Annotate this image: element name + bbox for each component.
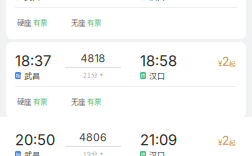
staticText: 汉口 bbox=[149, 70, 165, 81]
staticText: ▾ bbox=[100, 151, 103, 156]
staticText: 有票 bbox=[87, 96, 101, 107]
staticText: 始 bbox=[15, 151, 20, 156]
staticText: 4806 bbox=[79, 131, 107, 144]
staticText: 硬座 bbox=[17, 17, 31, 28]
staticText: 终 bbox=[140, 151, 145, 156]
button[interactable]: 18:37 bbox=[6, 42, 246, 118]
staticText: ¥ bbox=[218, 59, 222, 68]
staticText: ¥ bbox=[218, 138, 222, 147]
staticText: 始 bbox=[15, 72, 20, 79]
staticText: ▾ bbox=[100, 72, 103, 78]
staticText: 起 bbox=[229, 138, 236, 148]
staticText: 18:58 bbox=[140, 52, 177, 70]
staticText: 2 bbox=[222, 54, 229, 68]
staticText: 有票 bbox=[33, 17, 47, 28]
staticText: 4818 bbox=[80, 52, 105, 65]
staticText: 武昌 bbox=[24, 70, 40, 81]
staticText: 18:37 bbox=[15, 52, 51, 70]
staticText: 19分 bbox=[83, 149, 98, 156]
staticText: 无座 bbox=[71, 17, 85, 28]
staticText: 硬座 bbox=[17, 96, 31, 107]
staticText: 2 bbox=[222, 133, 229, 147]
staticText: 汉口 bbox=[149, 0, 165, 2]
staticText: 有票 bbox=[33, 96, 47, 107]
staticText: 21分 bbox=[83, 70, 98, 80]
staticText: 汉口 bbox=[149, 149, 165, 156]
staticText: 有票 bbox=[87, 17, 101, 28]
staticText: 无座 bbox=[71, 96, 85, 107]
staticText: 武昌 bbox=[24, 149, 40, 156]
staticText: 21:09 bbox=[140, 131, 177, 149]
staticText: 武昌 bbox=[24, 0, 40, 2]
staticText: 起 bbox=[229, 59, 236, 69]
staticText: 20:50 bbox=[15, 131, 55, 149]
button[interactable]: 20:50 bbox=[6, 121, 246, 156]
staticText: 终 bbox=[140, 72, 145, 79]
button[interactable]: 18:10 bbox=[6, 0, 246, 39]
